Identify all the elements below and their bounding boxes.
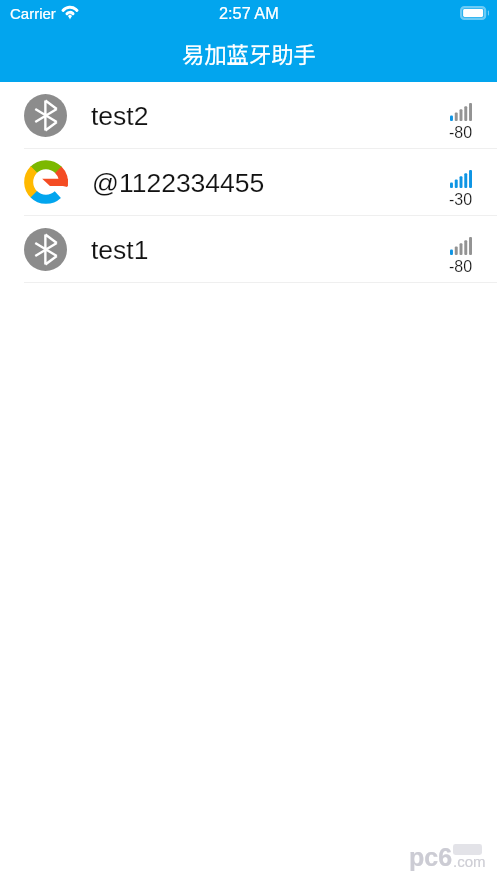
other: Signal strength 1 of 5 [450,103,472,121]
other: Bluetooth device [24,228,67,271]
staticText: pc6 [409,843,453,871]
staticText: -80 [449,258,473,276]
other: Signal strength 1 of 5 [450,237,472,255]
button[interactable]: Paired app device [0,149,497,216]
other: Battery full [460,6,489,20]
other: Wi-Fi [60,2,80,16]
other: Paired app device [24,160,68,204]
staticText: @1122334455 [92,168,265,198]
button[interactable]: Bluetooth device [0,82,497,149]
staticText: test2 [91,101,149,131]
button[interactable]: Bluetooth device [0,216,497,283]
staticText: .com [453,853,486,870]
other: Signal strength 5 of 5 [450,170,472,188]
staticText: Carrier [10,5,56,22]
staticText: 易加蓝牙助手 [182,37,316,69]
staticText: -30 [449,191,473,209]
staticText: 2:57 AM [219,4,279,22]
staticText: -80 [449,124,473,142]
staticText: test1 [91,235,149,265]
other: Bluetooth device [24,94,67,137]
